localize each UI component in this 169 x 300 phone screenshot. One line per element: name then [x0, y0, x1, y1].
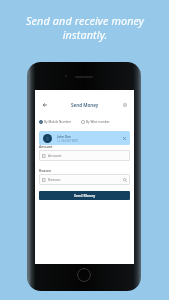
- staticText: John Doe: [57, 135, 71, 139]
- button[interactable]: Amount: [39, 150, 130, 161]
- staticText: Send Money: [74, 193, 96, 198]
- button[interactable]: Reason: [39, 174, 130, 185]
- staticText: +1 234 567 8901: [57, 139, 79, 143]
- staticText: Amount: [39, 144, 53, 149]
- button[interactable]: By Wise number: [81, 120, 110, 124]
- staticText: Send Money: [71, 102, 99, 108]
- staticText: JD: [46, 137, 50, 141]
- staticText: By Mobile Number: [44, 120, 72, 124]
- button[interactable]: Settings: [120, 100, 129, 109]
- staticText: Amount: [48, 153, 62, 158]
- staticText: By Wise number: [86, 120, 110, 124]
- staticText: Send and receive money instantly.: [26, 13, 144, 42]
- button[interactable]: Send Money: [39, 191, 130, 200]
- button[interactable]: Back: [40, 100, 49, 109]
- staticText: Reason: [48, 177, 61, 182]
- button[interactable]: By Mobile Number: [39, 120, 72, 124]
- staticText: Reason: [39, 168, 52, 173]
- button[interactable]: JD: [39, 131, 130, 145]
- button[interactable]: Remove recipient: [121, 135, 128, 142]
